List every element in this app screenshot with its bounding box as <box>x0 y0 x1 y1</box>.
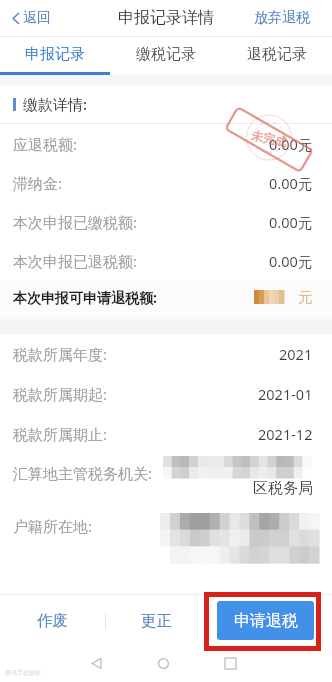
button[interactable]: 作废 <box>0 595 105 648</box>
staticText: 0.00元 <box>269 134 313 154</box>
staticText: 0.00元 <box>269 251 313 271</box>
staticText: 税款所属年度: <box>13 344 108 364</box>
staticText: 缴款详情: <box>23 94 88 114</box>
staticText: 滞纳金: <box>13 173 63 193</box>
button[interactable]: Back <box>81 648 111 678</box>
button[interactable]: 申请退税 <box>217 601 314 640</box>
staticText: 申报记录详情 <box>118 8 214 28</box>
staticText: 应退税额: <box>13 134 78 154</box>
staticText: 作废 <box>37 611 68 631</box>
button[interactable]: 更正 <box>106 595 207 648</box>
staticText: 0.00元 <box>269 212 313 232</box>
staticText: 申请退税 <box>234 611 298 631</box>
button[interactable]: 放弃退税 <box>232 1 332 35</box>
staticText: 税款所属期止: <box>13 424 108 444</box>
button[interactable]: 退税记录 <box>221 37 332 75</box>
staticText: 缴税记录 <box>136 45 196 64</box>
staticText: 户籍所在地: <box>13 516 93 536</box>
staticText: 2021 <box>279 344 313 364</box>
staticText: 税款所属期起: <box>13 384 108 404</box>
button[interactable]: 返回 <box>0 3 61 33</box>
staticText: 本次申报已退税额: <box>13 251 138 271</box>
button[interactable]: 缴税记录 <box>110 37 221 75</box>
staticText: 区税务局 <box>253 479 313 498</box>
staticText: 本次申报已缴税额: <box>13 212 138 232</box>
button[interactable]: Recent apps <box>215 648 245 678</box>
staticText: 返回 <box>23 9 51 27</box>
staticText: 退税记录 <box>247 45 307 64</box>
staticText: 汇算地主管税务机关: <box>13 463 153 483</box>
staticText: 更正 <box>141 611 172 631</box>
staticText: 未完成 <box>250 127 288 150</box>
button[interactable]: 申报记录 <box>0 37 110 75</box>
staticText: 腾讯手机管家 <box>5 669 41 677</box>
staticText: 申报记录 <box>25 45 85 64</box>
button[interactable]: Home <box>148 648 178 678</box>
staticText: 本次申报可申请退税额: <box>13 288 157 307</box>
staticText: 元 <box>298 288 313 306</box>
staticText: 2021-01 <box>258 384 313 404</box>
staticText: 2021-12 <box>258 424 313 444</box>
staticText: 0.00元 <box>269 173 313 193</box>
